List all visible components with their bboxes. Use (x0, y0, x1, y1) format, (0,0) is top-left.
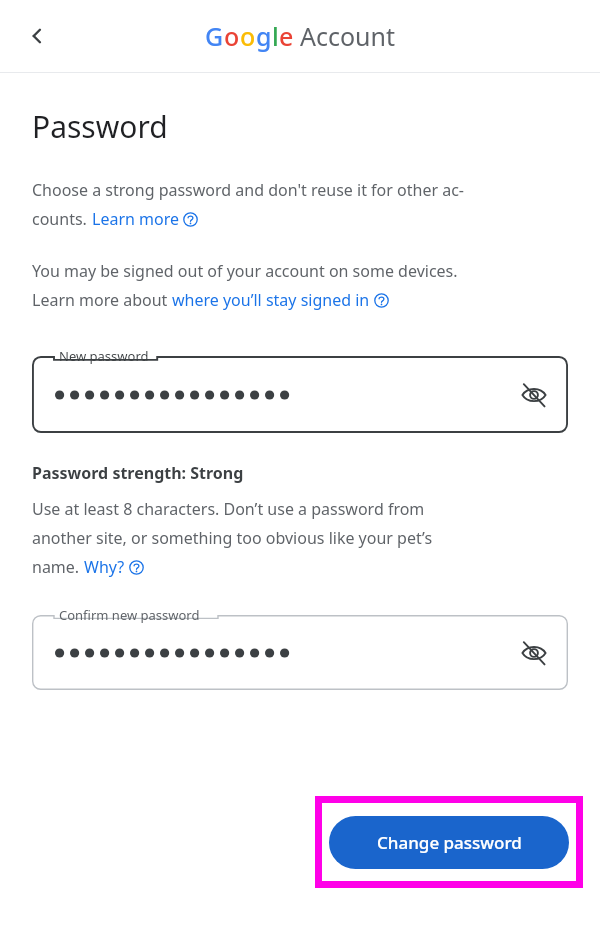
staticText: Password (32, 106, 168, 147)
staticText: l (272, 19, 279, 53)
staticText: o (224, 19, 240, 53)
staticText: New password (59, 347, 149, 365)
staticText: Change password (377, 831, 522, 854)
staticText: You may be signed out of your account on… (32, 260, 458, 282)
button[interactable]: Confirm new password (32, 606, 568, 690)
button[interactable]: Learn more (92, 208, 198, 230)
button[interactable]: New password (32, 347, 568, 433)
button[interactable]: Back (14, 12, 62, 60)
staticText: Learn more (92, 208, 179, 230)
staticText: Learn more about (32, 289, 172, 311)
staticText: where you’ll stay signed in (172, 289, 370, 311)
button[interactable]: Change password (329, 816, 569, 869)
staticText: Choose a strong password and don't reuse… (32, 179, 464, 201)
staticText: Password strength: Strong (32, 462, 244, 484)
staticText: o (240, 19, 256, 53)
staticText: g (256, 19, 272, 53)
staticText: counts. (32, 208, 92, 230)
button[interactable]: where you’ll stay signed in (172, 289, 389, 311)
staticText: e (279, 19, 294, 53)
staticText: Confirm new password (59, 606, 200, 624)
staticText: Use at least 8 characters. Don’t use a p… (32, 498, 425, 520)
staticText: Account (300, 19, 396, 53)
staticText: name. (32, 556, 84, 578)
staticText: Why? (84, 556, 125, 578)
button[interactable]: Why? (84, 556, 144, 578)
staticText: another site, or something too obvious l… (32, 527, 433, 549)
staticText: G (205, 19, 224, 53)
button[interactable]: Hide password (514, 375, 554, 415)
button[interactable]: Hide password (514, 633, 554, 673)
